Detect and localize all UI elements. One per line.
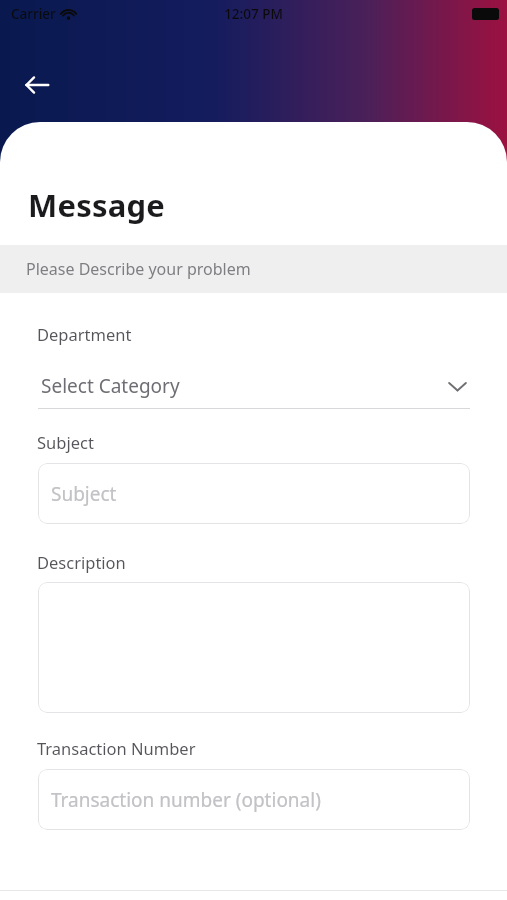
staticText: Department: [37, 323, 132, 345]
staticText: Select Category: [41, 373, 444, 399]
staticText: Carrier: [11, 5, 56, 23]
staticText: 12:07 PM: [224, 5, 283, 23]
staticText: Message: [28, 184, 165, 226]
button[interactable]: Back: [14, 62, 60, 108]
button[interactable]: Subject: [38, 463, 470, 524]
button[interactable]: Select Category: [38, 373, 470, 409]
staticText: Subject: [37, 431, 94, 453]
staticText: Transaction Number: [37, 737, 196, 759]
button[interactable]: [38, 582, 470, 713]
staticText: Description: [37, 551, 126, 573]
staticText: Transaction number (optional): [51, 787, 321, 813]
staticText: Please Describe your problem: [26, 258, 251, 280]
staticText: Subject: [51, 481, 117, 507]
button[interactable]: Transaction number (optional): [38, 769, 470, 830]
